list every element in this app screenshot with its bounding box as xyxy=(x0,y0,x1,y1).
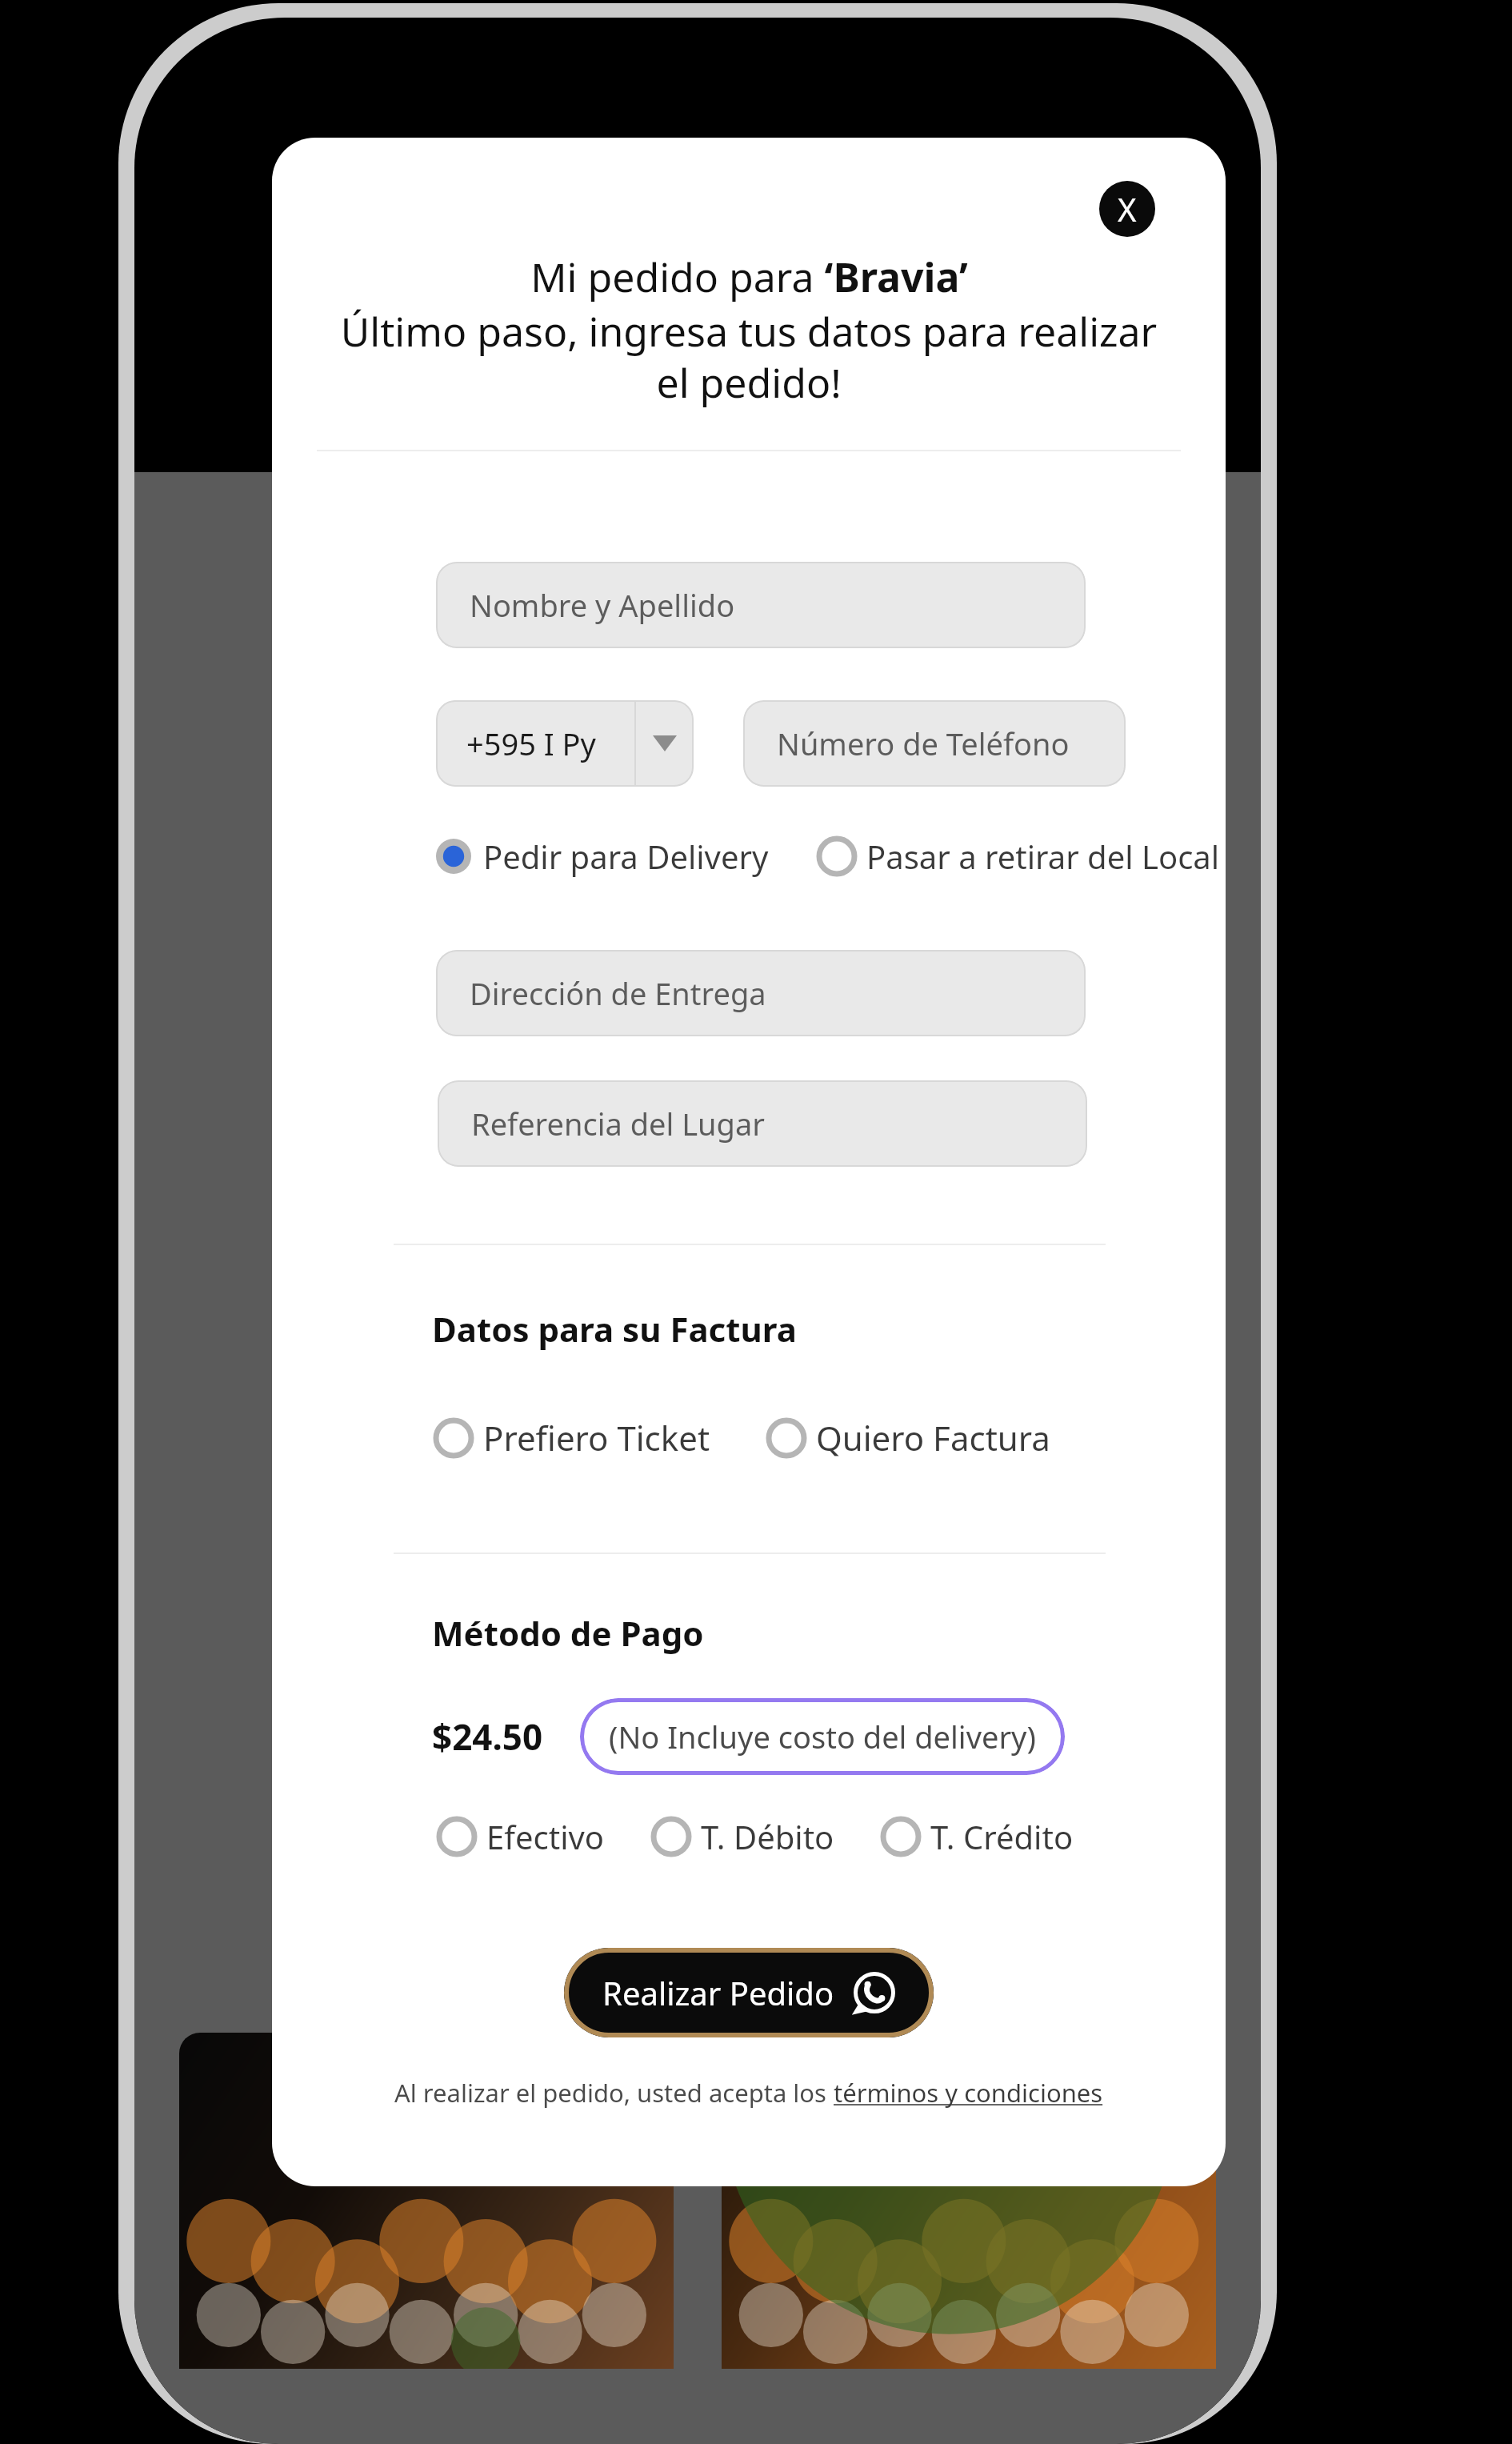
staticText: $24.50 xyxy=(432,1713,543,1761)
staticText: Método de Pago xyxy=(432,1610,704,1656)
button[interactable]: Efectivo xyxy=(432,1810,610,1863)
staticText: (No Incluye costo del delivery) xyxy=(609,1716,1036,1757)
staticText: Realizar Pedido xyxy=(602,1971,834,2014)
button[interactable]: +595 I Py xyxy=(436,700,694,787)
staticText: Nombre y Apellido xyxy=(470,584,735,626)
staticText: Efectivo xyxy=(486,1815,605,1858)
staticText: Dirección de Entrega xyxy=(470,972,766,1014)
button[interactable] xyxy=(722,2033,1216,2369)
staticText: +595 I Py xyxy=(466,723,634,764)
button[interactable]: términos y condiciones xyxy=(834,2076,1103,2109)
button[interactable]: (No Incluye costo del delivery) xyxy=(580,1698,1065,1775)
button[interactable]: Realizar Pedido xyxy=(564,1948,934,2037)
staticText: Pedir para Delivery xyxy=(483,835,769,878)
staticText: Mi pedido para ‘Bravia’ xyxy=(530,250,968,304)
button[interactable]: Dirección de Entrega xyxy=(436,950,1086,1036)
staticText: Número de Teléfono xyxy=(777,723,1070,764)
button[interactable]: Prefiero Ticket xyxy=(429,1410,715,1465)
button[interactable]: Pedir para Delivery xyxy=(429,830,774,883)
staticText: Quiero Factura xyxy=(816,1415,1050,1460)
button[interactable]: Pasar a retirar del Local xyxy=(812,830,1225,883)
staticText: T. Crédito xyxy=(930,1815,1074,1858)
staticText: Prefiero Ticket xyxy=(483,1415,710,1460)
staticText: Pasar a retirar del Local xyxy=(866,835,1220,878)
staticText: Al realizar el pedido, usted acepta los xyxy=(394,2076,834,2109)
staticText: Último paso, ingresa tus datos para real… xyxy=(330,304,1168,410)
button[interactable]: T. Crédito xyxy=(876,1810,1078,1863)
button[interactable]: T. Débito xyxy=(646,1810,839,1863)
button[interactable]: Número de Teléfono xyxy=(743,700,1126,787)
staticText: X xyxy=(1118,187,1137,230)
staticText: T. Débito xyxy=(701,1815,834,1858)
button[interactable] xyxy=(179,2033,674,2369)
staticText: Datos para su Factura xyxy=(432,1306,797,1352)
button[interactable]: Quiero Factura xyxy=(762,1410,1055,1465)
button[interactable]: Cerrar xyxy=(1099,181,1155,237)
button[interactable]: Referencia del Lugar xyxy=(438,1080,1087,1167)
staticText: Referencia del Lugar xyxy=(471,1103,765,1144)
button[interactable]: Nombre y Apellido xyxy=(436,562,1086,648)
